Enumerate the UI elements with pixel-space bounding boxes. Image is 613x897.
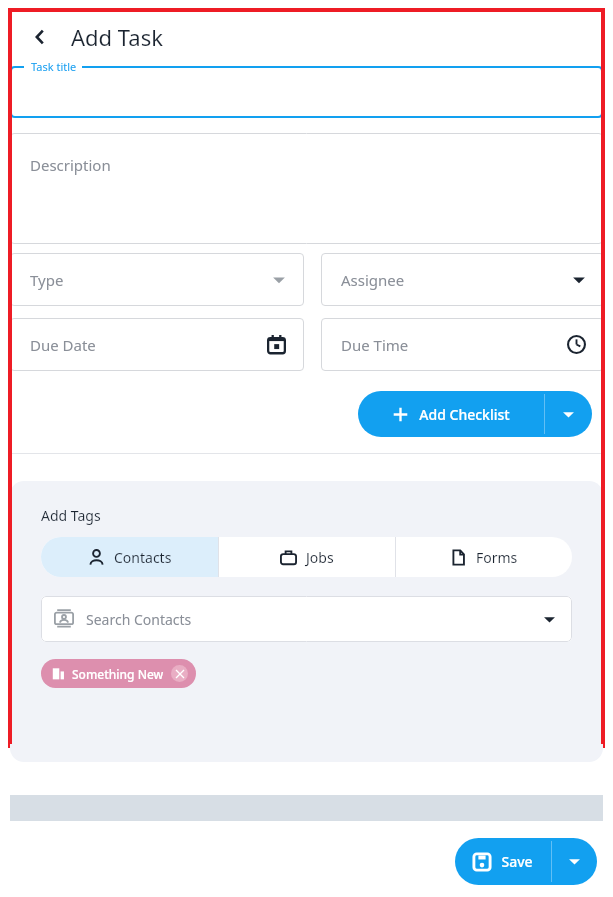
button[interactable]: Remove tag [171,665,188,682]
staticText: Something New [72,666,164,682]
staticText: Type [30,270,64,290]
button[interactable]: Type [10,253,304,306]
button[interactable]: Something New [41,659,196,688]
button[interactable]: Due Date [10,318,304,371]
staticText: Jobs [306,548,334,567]
button[interactable]: Due Time [321,318,604,371]
staticText: Due Date [30,335,96,355]
staticText: Add Task [71,22,163,52]
button[interactable]: More options [545,391,592,437]
staticText: Forms [476,548,518,567]
staticText: Due Time [341,335,409,355]
staticText: Save [501,852,533,871]
staticText: Contacts [114,548,172,567]
button[interactable]: Jobs [219,537,395,577]
staticText: Add Tags [41,506,101,525]
button[interactable]: Assignee [321,253,604,306]
staticText: Description [30,155,111,175]
staticText: Assignee [341,270,405,290]
staticText: Task title [31,59,77,74]
button[interactable]: Search Contacts [41,596,572,642]
button[interactable]: Forms [396,537,572,577]
button[interactable]: More options [552,838,597,885]
button[interactable]: Add Checklist [358,391,544,437]
button[interactable]: Contacts [41,537,218,577]
button[interactable]: Back [20,17,60,57]
staticText: Search Contacts [86,610,192,629]
staticText: Add Checklist [419,405,510,424]
button[interactable]: Description [10,133,603,244]
button[interactable]: Save [455,838,551,885]
button[interactable]: Task title [10,66,603,118]
